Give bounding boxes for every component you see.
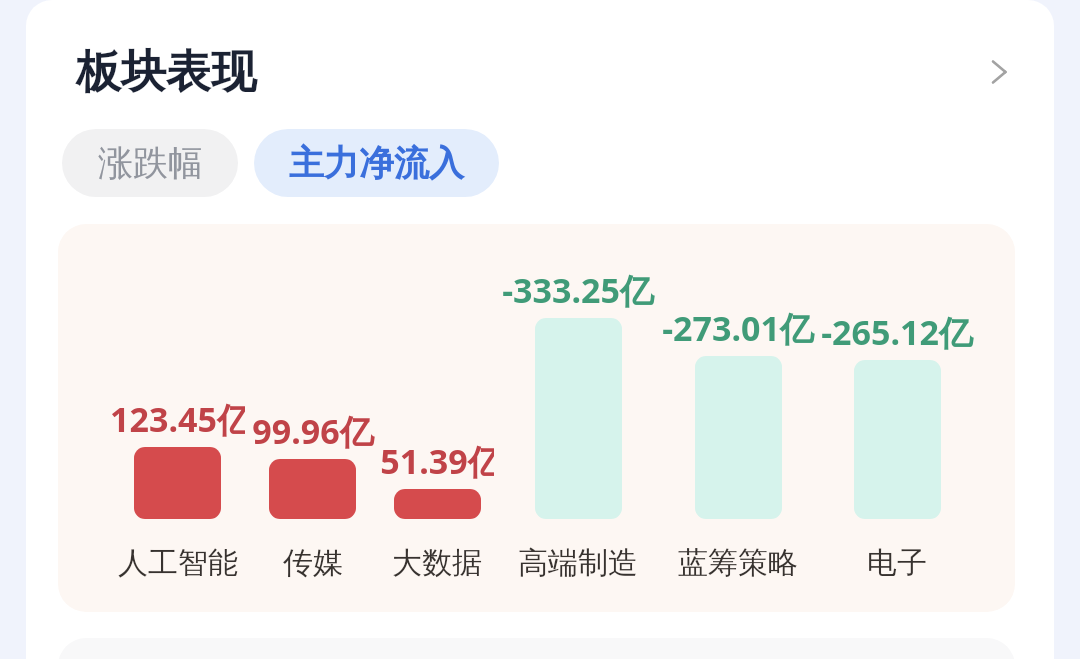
staticText: 传媒 — [283, 544, 343, 582]
staticText: 涨跌幅 — [98, 141, 203, 185]
button[interactable]: -333.25亿 — [494, 224, 662, 612]
button[interactable]: 123.45亿 — [110, 224, 245, 612]
staticText: 蓝筹策略 — [678, 544, 798, 582]
button[interactable]: 涨跌幅 — [62, 129, 238, 197]
staticText: 51.39亿 — [380, 438, 494, 484]
staticText: -333.25亿 — [502, 267, 654, 313]
button[interactable]: 主力净流入 — [254, 129, 499, 197]
button[interactable]: 板块表现 — [26, 26, 1054, 118]
staticText: 大数据 — [392, 544, 482, 582]
staticText: 主力净流入 — [289, 141, 464, 185]
staticText: 高端制造 — [518, 544, 638, 582]
staticText: 99.96亿 — [252, 408, 374, 454]
staticText: -265.12亿 — [821, 309, 973, 355]
staticText: 电子 — [867, 544, 927, 582]
button[interactable]: 99.96亿 — [245, 224, 380, 612]
staticText: 人工智能 — [118, 544, 238, 582]
button[interactable]: -273.01亿 — [662, 224, 814, 612]
staticText: 123.45亿 — [110, 396, 245, 442]
staticText: -273.01亿 — [662, 305, 814, 351]
button[interactable]: -265.12亿 — [814, 224, 980, 612]
button[interactable]: 51.39亿 — [380, 224, 494, 612]
other: 查看更多 — [971, 44, 1027, 100]
staticText: 板块表现 — [76, 44, 256, 101]
